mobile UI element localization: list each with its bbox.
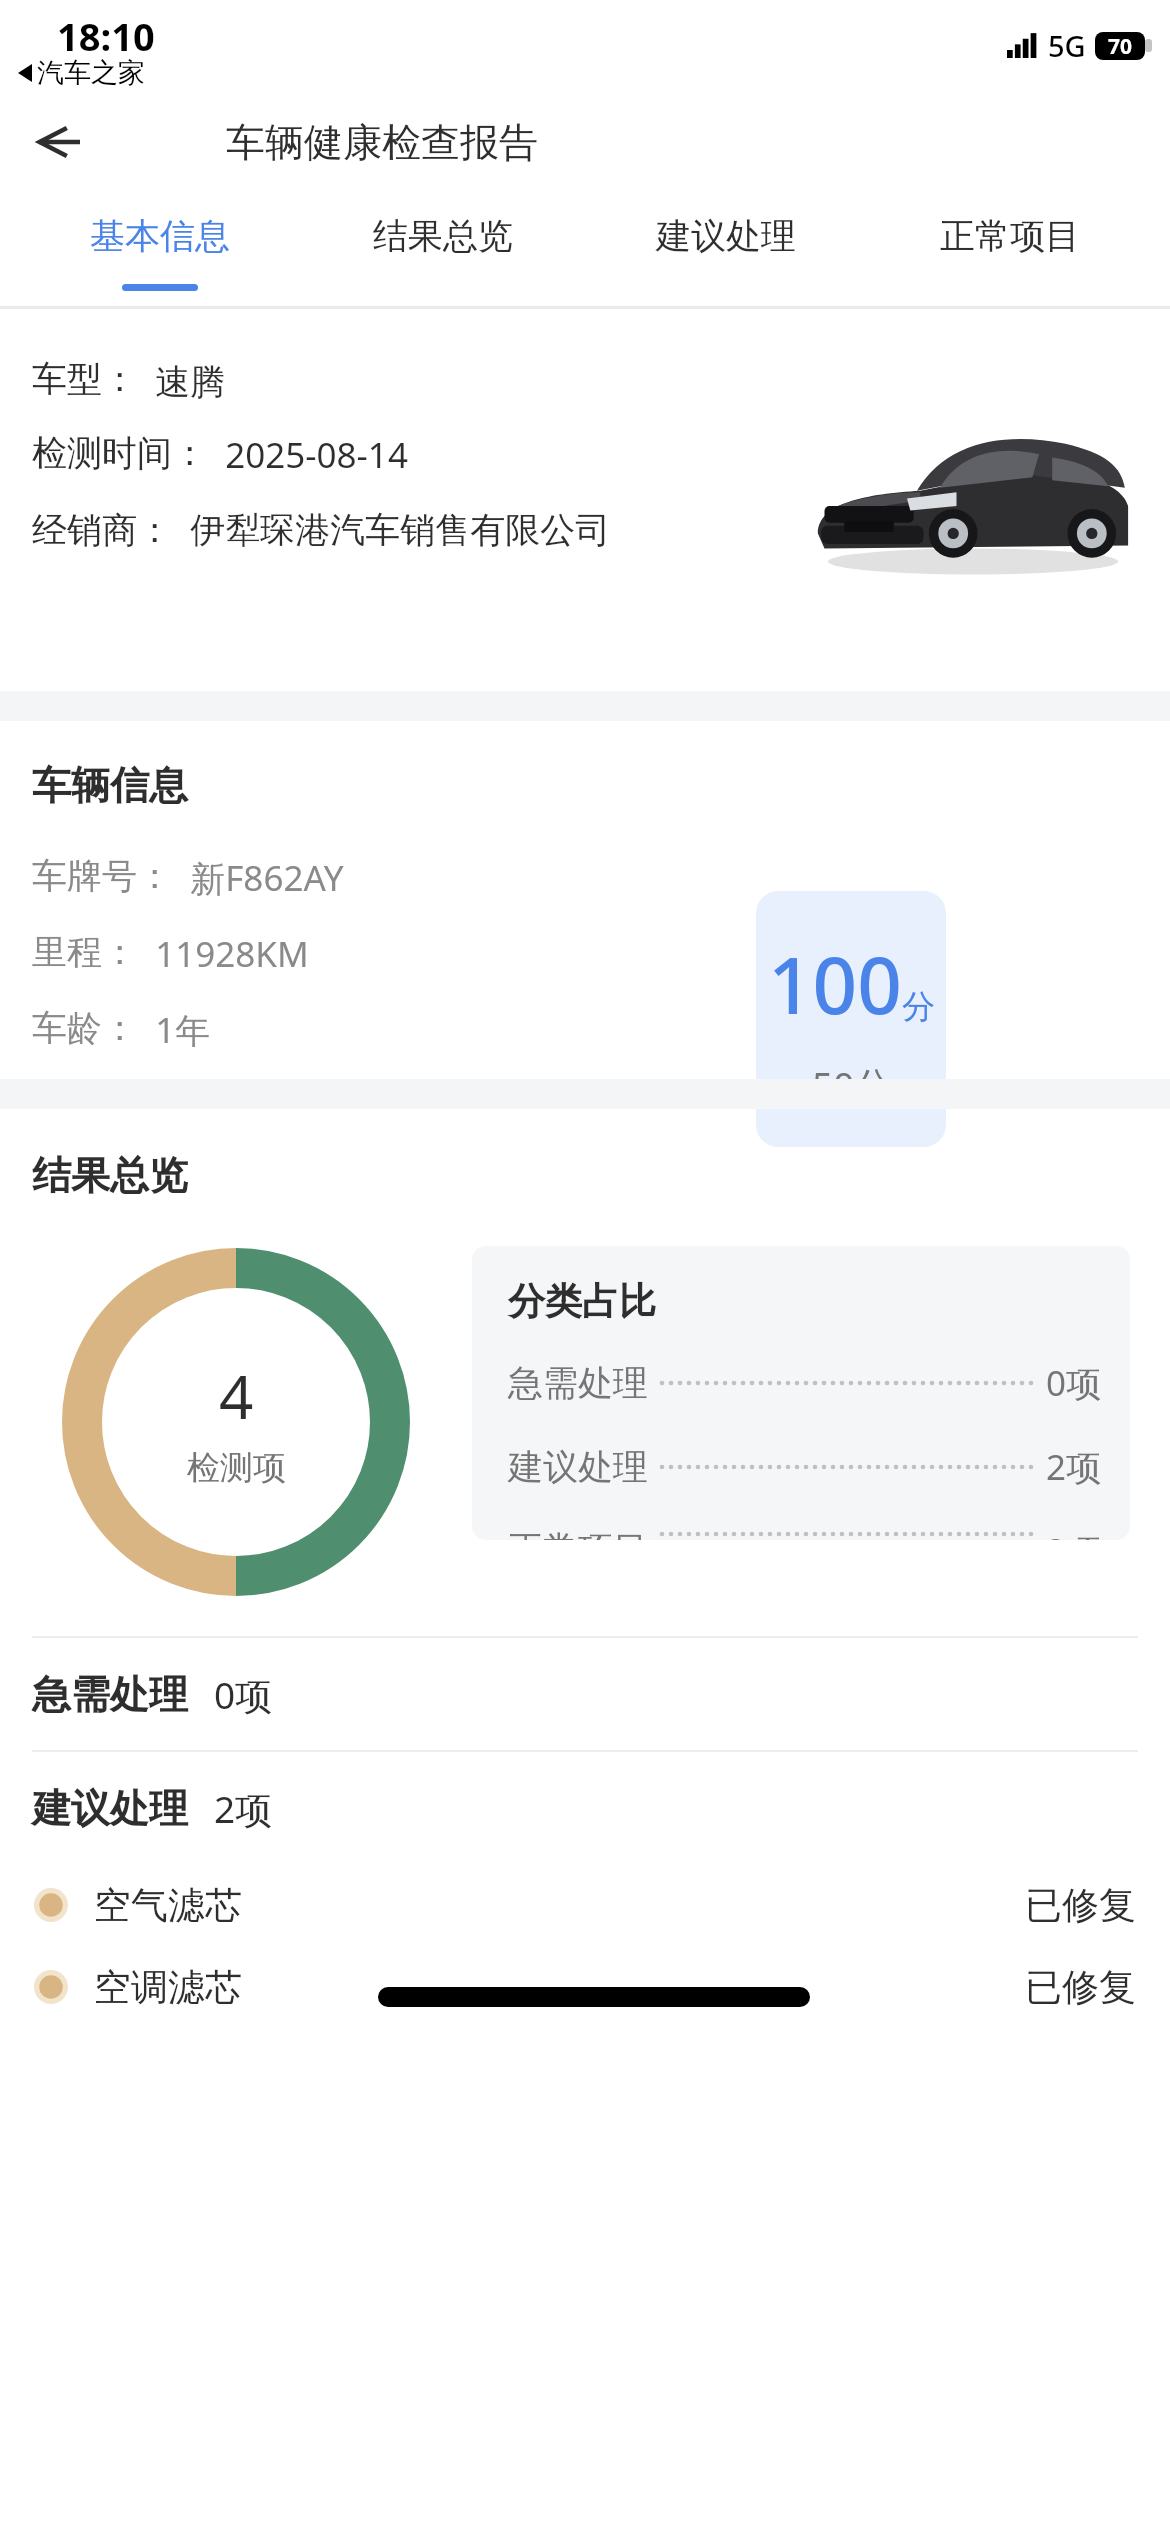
staticText: 空调滤芯 xyxy=(94,1964,242,2011)
staticText: 0项 xyxy=(1046,1359,1102,1407)
button[interactable]: 基本信息 xyxy=(18,188,301,306)
staticText: 70 xyxy=(1108,32,1133,60)
staticText: 检测时间： xyxy=(32,431,207,475)
staticText: 急需处理 xyxy=(32,1670,188,1719)
staticText: 2项 xyxy=(214,1783,273,1834)
button[interactable]: Back xyxy=(20,104,96,180)
staticText: 2025-08-14 xyxy=(207,431,408,479)
button[interactable]: 急需处理 xyxy=(32,1638,1170,1750)
staticText: 正常项目 xyxy=(940,214,1080,258)
staticText: 1年 xyxy=(137,1006,211,1054)
staticText: 0项 xyxy=(214,1669,273,1720)
staticText: 已修复 xyxy=(1025,1964,1136,2011)
staticText: 100 xyxy=(768,931,902,1037)
staticText: 18:10 xyxy=(57,10,155,62)
staticText: 正常项目 xyxy=(508,1527,648,1540)
staticText: 车辆健康检查报告 xyxy=(226,118,538,167)
button[interactable]: 正常项目 xyxy=(868,188,1152,306)
button[interactable]: 结果总览 xyxy=(301,188,584,306)
staticText: 基本信息 xyxy=(90,214,230,258)
staticText: 检测项 xyxy=(187,1447,286,1489)
staticText: 50分 xyxy=(812,1059,892,1110)
button[interactable]: 空气滤芯 xyxy=(0,1864,1170,1946)
staticText: 急需处理 xyxy=(508,1361,648,1405)
staticText: 分 xyxy=(902,986,935,1028)
staticText: 2项 xyxy=(1046,1443,1102,1491)
button[interactable]: 建议处理 xyxy=(584,188,868,306)
staticText: 已修复 xyxy=(1025,1882,1136,1929)
staticText: 空气滤芯 xyxy=(94,1882,242,1929)
staticText: 建议处理 xyxy=(32,1784,188,1833)
staticText: 新F862AY xyxy=(172,854,344,902)
staticText: 车辆信息 xyxy=(32,761,188,810)
button[interactable]: 空调滤芯 xyxy=(0,1946,1170,2028)
staticText: 车牌号： xyxy=(32,854,172,898)
staticText: 里程： xyxy=(32,930,137,974)
staticText: 建议处理 xyxy=(508,1445,648,1489)
staticText: 经销商： 伊犁琛港汽车销售有限公司 xyxy=(32,505,611,553)
staticText: 速腾 xyxy=(137,357,226,405)
staticText: 汽车之家 xyxy=(37,56,145,90)
staticText: 11928KM xyxy=(137,930,309,978)
staticText: 车龄： xyxy=(32,1006,137,1050)
staticText: 2项 xyxy=(1046,1527,1102,1540)
staticText: 结果总览 xyxy=(32,1151,188,1200)
staticText: 分类占比 xyxy=(508,1278,656,1325)
staticText: 结果总览 xyxy=(373,214,513,258)
staticText: 建议处理 xyxy=(656,214,796,258)
button[interactable]: 100 xyxy=(756,891,946,1147)
staticText: 车型： xyxy=(32,357,137,401)
button[interactable]: 建议处理 xyxy=(32,1752,1170,1864)
staticText: 4 xyxy=(219,1355,254,1437)
staticText: 5G xyxy=(1048,26,1086,65)
